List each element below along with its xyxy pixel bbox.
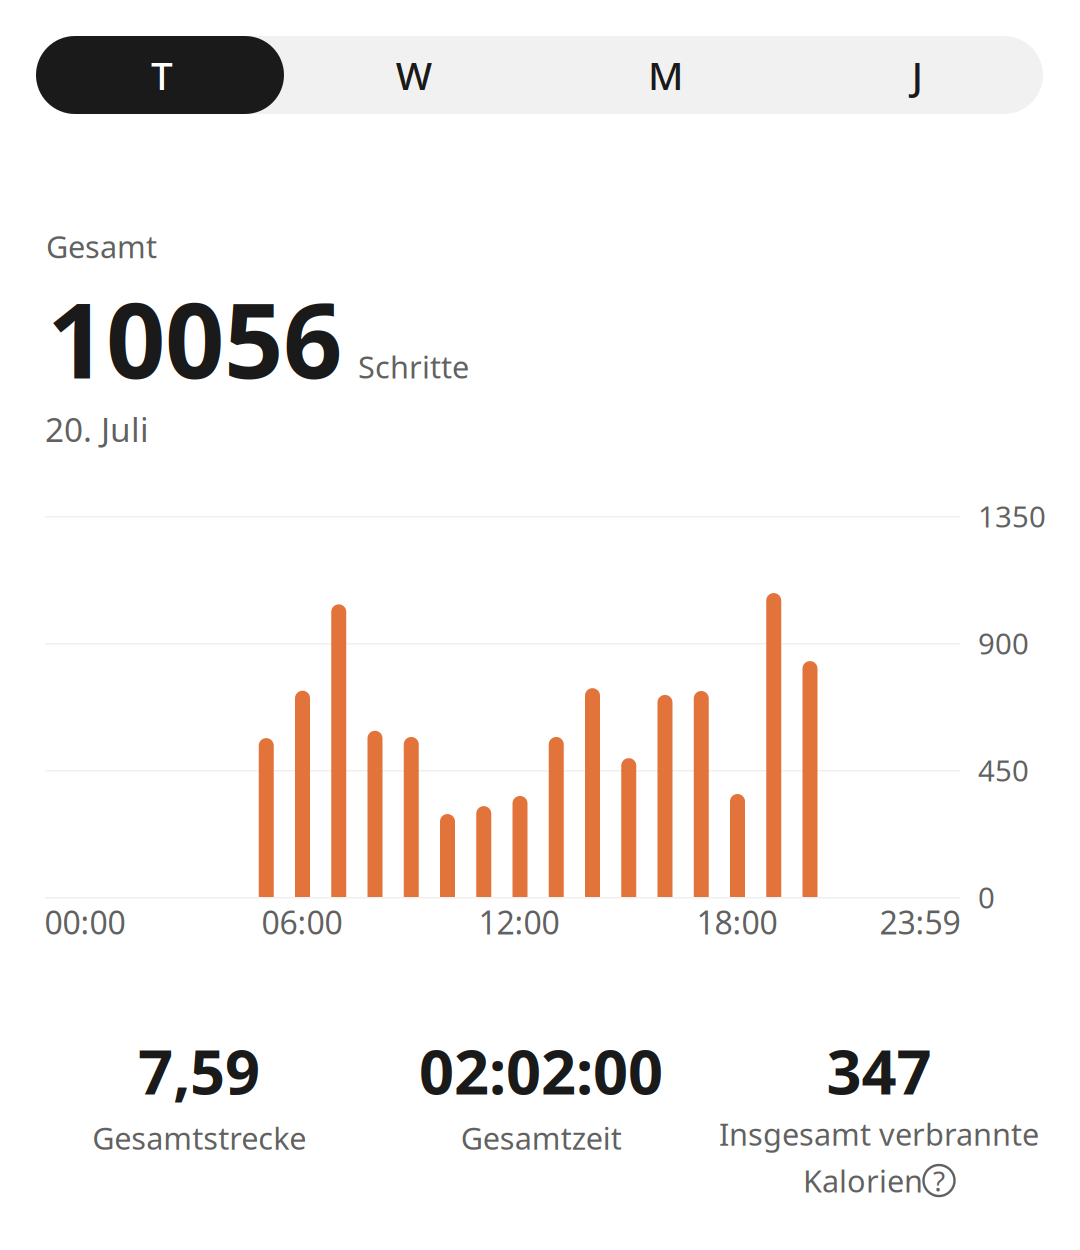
staticText: M [648,49,683,101]
staticText: Gesamtzeit [460,1117,621,1158]
staticText: T [151,49,173,101]
staticText: 900 [978,623,1029,662]
staticText: 347 [826,1030,931,1111]
staticText: Insgesamt verbrannte [719,1113,1039,1154]
button[interactable]: Was bedeutet das? [923,1164,955,1196]
staticText: Gesamt [46,226,157,267]
button[interactable]: M [539,36,791,114]
staticText: Schritte [358,346,469,387]
staticText: 00:00 [44,901,125,943]
staticText: 450 [978,750,1029,789]
staticText: 12:00 [478,901,559,943]
button[interactable]: W [288,36,540,114]
button[interactable]: T [36,36,288,114]
staticText: 7,59 [138,1030,260,1111]
staticText: 0 [978,877,995,916]
staticText: ? [933,1162,945,1199]
staticText: 06:00 [261,901,342,943]
staticText: 10056 [47,269,342,407]
staticText: 02:02:00 [419,1030,663,1111]
staticText: W [396,49,432,101]
staticText: Gesamtstrecke [92,1117,306,1158]
staticText: J [912,49,923,101]
staticText: 20. Juli [45,407,149,451]
staticText: Kalorien [803,1160,923,1201]
staticText: 23:59 [879,901,960,943]
staticText: 1350 [978,496,1046,535]
button[interactable]: J [791,36,1043,114]
staticText: 18:00 [696,901,777,943]
